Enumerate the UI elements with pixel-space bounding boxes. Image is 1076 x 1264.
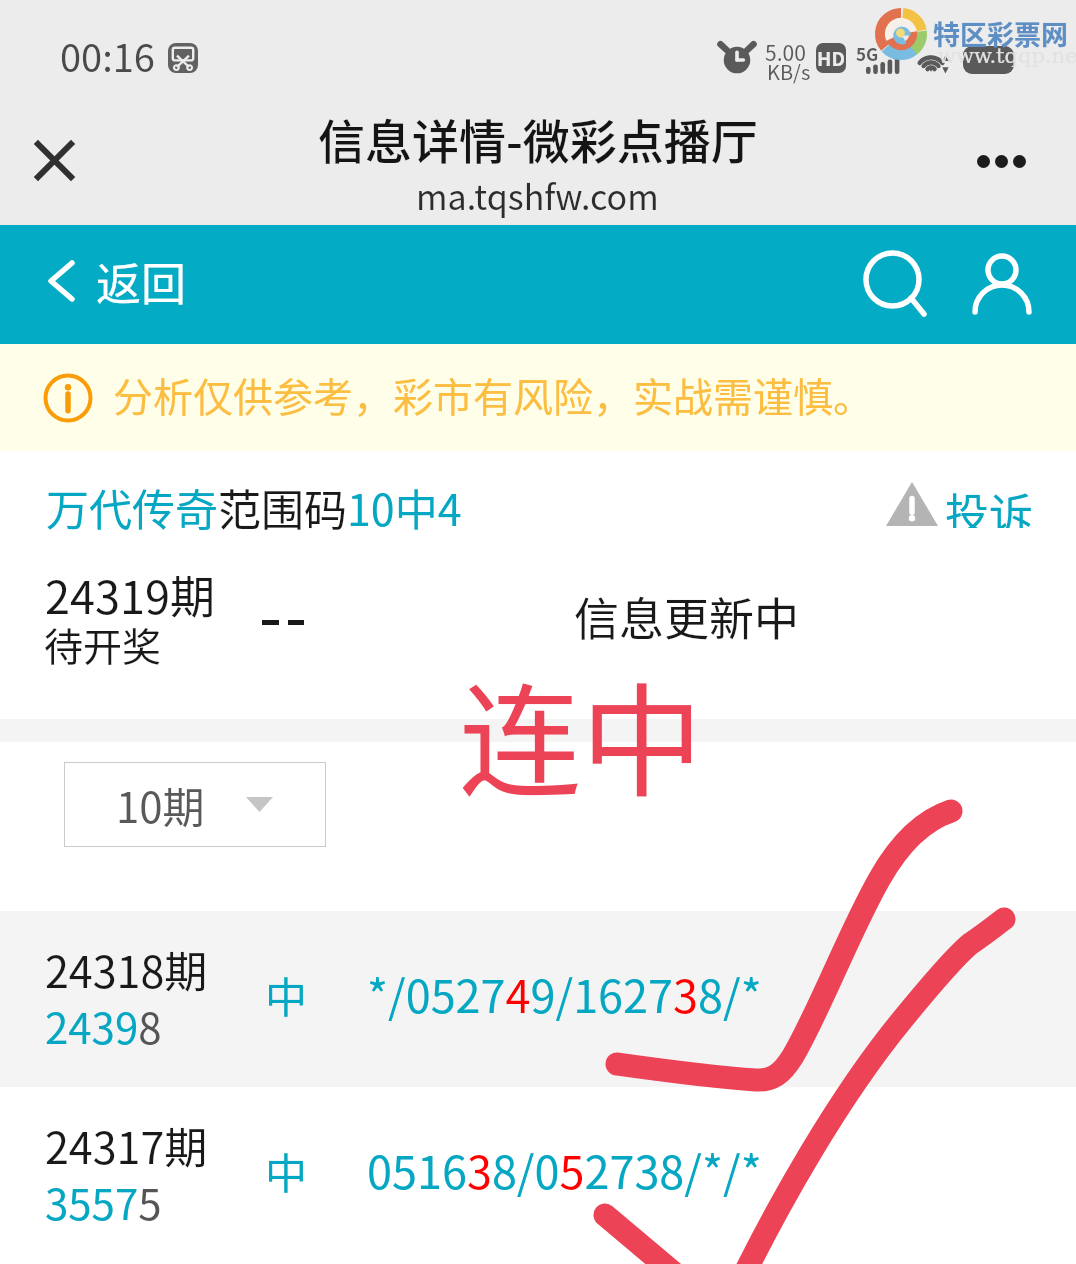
staticText: 5.00 [765, 37, 806, 67]
staticText: www.tqqp.net [938, 44, 1076, 68]
staticText: 连中 [459, 644, 703, 821]
staticText: 5G [856, 41, 879, 66]
button[interactable]: Close [22, 128, 86, 192]
staticText: 信息详情-微彩点播厅 [318, 104, 758, 172]
staticText: 分析仅供参考，彩市有风险，实战需谨慎。 [113, 366, 873, 424]
staticText: 00:16 [60, 28, 155, 83]
staticText: 投诉 [945, 480, 1033, 528]
button[interactable] [0, 1087, 1076, 1263]
staticText: 051638/052738/*/* [367, 1137, 762, 1202]
staticText: 35575 [45, 1171, 162, 1232]
button[interactable]: 返回 [49, 248, 187, 314]
staticText: 特区彩票网 [933, 14, 1068, 53]
staticText: 中 [265, 1140, 308, 1201]
button[interactable]: Search [852, 240, 938, 326]
staticText: KB/s [767, 57, 811, 86]
staticText: 信息更新中 [574, 584, 800, 649]
button[interactable]: Account [965, 240, 1051, 326]
staticText: 返回 [96, 249, 187, 314]
staticText: */052749/162738/* [367, 961, 762, 1026]
staticText: HD [817, 44, 845, 72]
staticText: 10期 [116, 774, 205, 835]
staticText: 24398 [45, 995, 162, 1056]
staticText: 24319期 [45, 562, 215, 627]
button[interactable]: 投诉 [885, 480, 1033, 528]
staticText: 万代传奇范围码10中4 [46, 476, 462, 538]
staticText: 24317期 [45, 1114, 208, 1176]
staticText: 中 [265, 964, 308, 1025]
staticText: ma.tqshfw.com [416, 171, 659, 220]
button[interactable]: More options [955, 123, 1047, 199]
button[interactable]: 10期 [64, 762, 326, 847]
staticText: 待开奖 [44, 616, 162, 672]
button[interactable] [0, 911, 1076, 1087]
staticText: 24318期 [45, 938, 208, 1000]
